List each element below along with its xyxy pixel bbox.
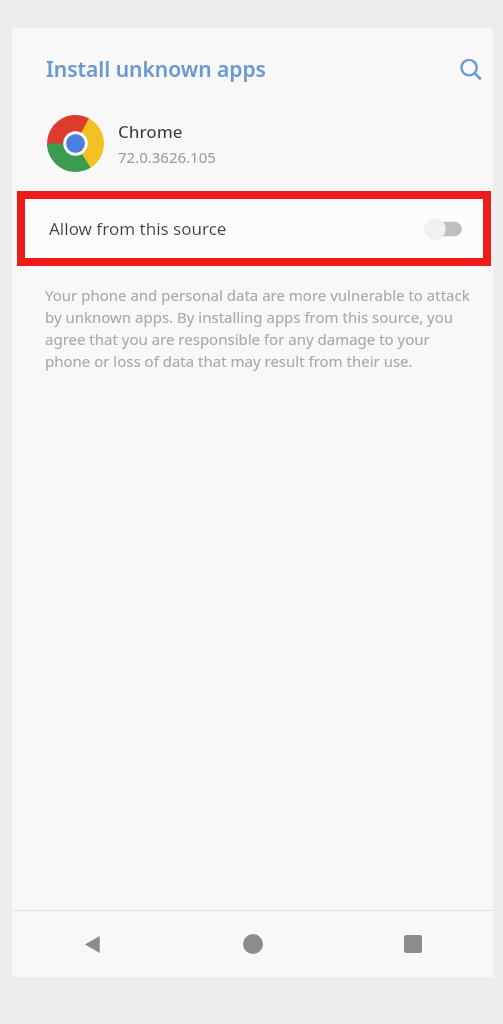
staticText: Chrome	[118, 120, 183, 143]
button[interactable]: Allow from this source	[25, 199, 483, 258]
staticText: 72.0.3626.105	[118, 147, 216, 167]
button[interactable]: Home	[173, 911, 333, 977]
button[interactable]: Recent apps	[333, 911, 493, 977]
staticText: Install unknown apps	[46, 55, 266, 84]
staticText: Your phone and personal data are more vu…	[45, 285, 478, 372]
button[interactable]: Search	[448, 47, 494, 93]
button[interactable]: Allow from this source	[424, 217, 466, 241]
button[interactable]: Chrome	[12, 105, 493, 181]
staticText: Allow from this source	[49, 217, 424, 240]
button[interactable]: Back	[12, 911, 173, 977]
